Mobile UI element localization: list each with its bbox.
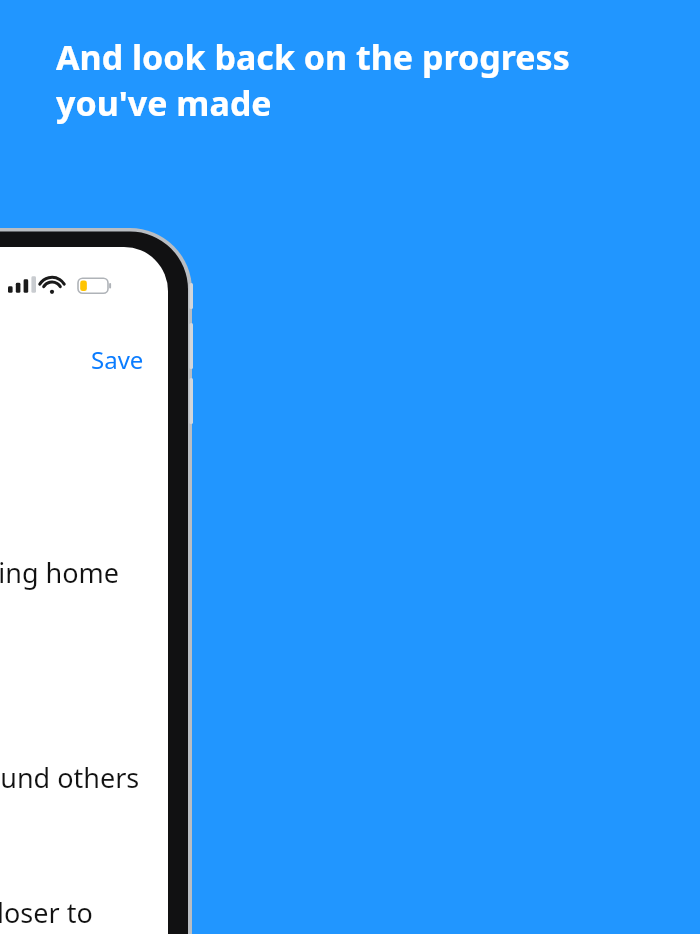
staticText: Around others [0,759,140,796]
button[interactable]: Around others [0,755,168,799]
staticText: Leaving home [0,554,120,591]
button[interactable]: Leaving home [0,550,168,594]
staticText: Save [91,343,144,376]
staticText: And look back on the progress you've mad… [56,34,652,126]
button[interactable]: Save [66,340,144,378]
staticText: Closer to [0,894,93,931]
button[interactable]: Closer to [0,890,168,934]
